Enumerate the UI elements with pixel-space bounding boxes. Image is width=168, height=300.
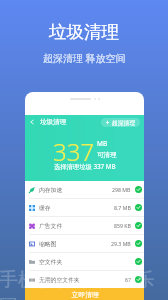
staticText: 超深清理 bbox=[112, 119, 136, 126]
button[interactable]: 立即清理 bbox=[25, 288, 144, 300]
staticText: 67 bbox=[125, 276, 131, 283]
staticText: 内存加速 bbox=[39, 186, 63, 193]
button[interactable]: 缓存 bbox=[25, 199, 144, 216]
staticText: MB bbox=[97, 139, 108, 148]
staticText: 298 MB bbox=[112, 186, 131, 193]
staticText: 337 bbox=[53, 135, 95, 168]
staticText: 可清理 bbox=[97, 151, 117, 159]
staticText: 立即清理 bbox=[71, 290, 99, 299]
button[interactable]: 超深清理 bbox=[101, 118, 140, 127]
button[interactable]: 空文件夹 bbox=[25, 253, 144, 270]
staticText: 无用的空文件夹 bbox=[39, 276, 80, 283]
staticText: 8.7 MB bbox=[114, 204, 131, 211]
button[interactable]: 广告文件 bbox=[25, 217, 144, 234]
staticText: 选择清理垃圾 337 MB bbox=[54, 162, 116, 171]
staticText: 29.3 MB bbox=[111, 240, 131, 247]
staticText: 垃圾清理 bbox=[49, 21, 119, 43]
button[interactable]: 无用的空文件夹 bbox=[25, 271, 144, 288]
staticText: 859 KB bbox=[114, 222, 131, 229]
staticText: 手机软件下载BY乐园.XY. bbox=[0, 266, 167, 300]
button[interactable]: 缩略图 bbox=[25, 235, 144, 252]
staticText: 缩略图 bbox=[39, 240, 57, 247]
staticText: 垃圾清理 bbox=[40, 118, 67, 126]
staticText: 超深清理 释放空间 bbox=[43, 51, 126, 65]
staticText: 缓存 bbox=[39, 204, 51, 211]
button[interactable]: 内存加速 bbox=[25, 181, 144, 198]
button[interactable]: 返回 bbox=[25, 115, 39, 129]
staticText: 广告文件 bbox=[39, 222, 63, 229]
staticText: 空文件夹 bbox=[39, 258, 63, 265]
